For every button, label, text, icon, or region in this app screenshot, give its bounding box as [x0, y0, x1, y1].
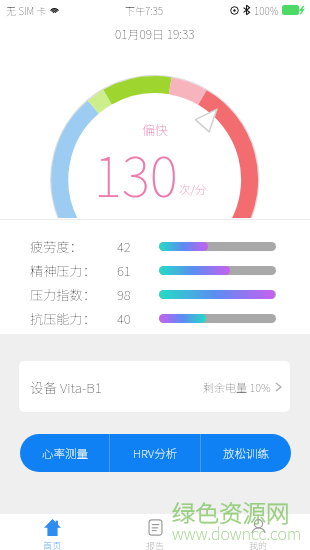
- staticText: 61: [117, 261, 131, 280]
- staticText: 设备 Vita-B1: [30, 377, 102, 397]
- staticText: 疲劳度：: [30, 237, 83, 256]
- staticText: 绿色资源网: [172, 495, 290, 529]
- staticText: 次/分: [179, 181, 207, 198]
- button[interactable]: 我的: [207, 514, 310, 550]
- staticText: 下午7:35: [125, 3, 163, 17]
- staticText: 130: [94, 132, 178, 213]
- staticText: 抗压能力：: [30, 309, 96, 328]
- staticText: 98: [117, 285, 131, 304]
- staticText: www.downcc.com: [172, 521, 302, 544]
- staticText: 首页: [43, 539, 62, 550]
- button[interactable]: 放松训练: [201, 434, 291, 472]
- staticText: 01月09日 19:33: [115, 25, 195, 42]
- staticText: 无 SIM 卡: [6, 3, 47, 17]
- staticText: 40: [117, 309, 131, 328]
- staticText: 精神压力：: [30, 261, 96, 280]
- button[interactable]: 心率测量: [20, 434, 109, 472]
- staticText: 偏快: [142, 120, 169, 136]
- staticText: 压力指数：: [30, 285, 96, 304]
- button[interactable]: 设备 Vita-B1: [19, 361, 290, 412]
- staticText: 100%: [254, 3, 279, 17]
- staticText: 放松训练: [223, 445, 269, 462]
- staticText: 报告: [146, 539, 165, 550]
- staticText: 42: [117, 237, 131, 256]
- staticText: HRV分析: [133, 445, 178, 462]
- button[interactable]: 首页: [0, 514, 104, 550]
- button[interactable]: 报告: [104, 514, 207, 550]
- button[interactable]: HRV分析: [110, 434, 200, 472]
- staticText: 我的: [249, 539, 268, 550]
- staticText: 剩余电量 10%: [203, 379, 271, 395]
- staticText: 心率测量: [42, 445, 88, 462]
